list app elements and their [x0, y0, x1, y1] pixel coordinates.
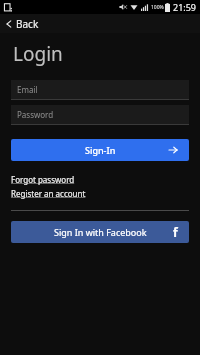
button[interactable]: Sign-In: [11, 139, 189, 161]
staticText: Email: [17, 84, 38, 95]
staticText: Sign-In: [85, 144, 116, 156]
staticText: 21:59: [173, 1, 197, 13]
staticText: 100%: [151, 4, 164, 11]
staticText: Password: [17, 109, 54, 120]
staticText: Sign In with Facebook: [54, 226, 147, 238]
button[interactable]: Email: [11, 80, 189, 100]
staticText: Back: [16, 17, 39, 31]
button[interactable]: Forgot password: [11, 174, 75, 185]
button[interactable]: Back: [0, 14, 200, 33]
staticText: Register an account: [11, 188, 86, 199]
button[interactable]: Password: [11, 105, 189, 125]
staticText: Login: [13, 41, 63, 67]
button[interactable]: Sign In with Facebook: [11, 221, 189, 243]
button[interactable]: Register an account: [11, 188, 86, 199]
staticText: f: [173, 224, 178, 240]
staticText: Forgot password: [11, 174, 75, 185]
